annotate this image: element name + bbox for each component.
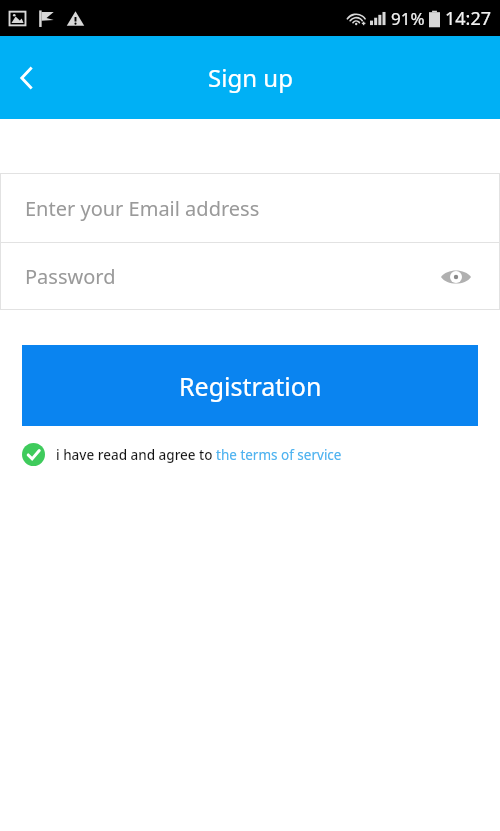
staticText: Sign up xyxy=(208,61,293,94)
staticText: Password xyxy=(25,263,116,290)
button[interactable]: Enter your Email address xyxy=(0,173,500,243)
button[interactable]: Show password xyxy=(436,257,476,297)
button[interactable]: Back xyxy=(0,51,54,105)
button[interactable]: Password xyxy=(0,243,500,310)
button[interactable]: i have read and agree to the terms of se… xyxy=(22,443,500,466)
staticText: Enter your Email address xyxy=(25,195,260,222)
button[interactable]: Registration xyxy=(22,345,478,426)
staticText: Registration xyxy=(179,369,322,403)
staticText: 14:27 xyxy=(445,6,492,31)
staticText: i have read and agree to the terms of se… xyxy=(56,446,342,464)
staticText: 91% xyxy=(391,7,425,30)
